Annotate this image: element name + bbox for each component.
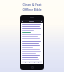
button[interactable]: App header: [20, 15, 44, 70]
staticText: Offline Bible: [22, 8, 42, 12]
button[interactable]: Home button: [31, 66, 34, 69]
staticText: Clean & Fast: [22, 3, 42, 7]
button[interactable]: Navigation bar: [22, 61, 42, 63]
button[interactable]: App header: [21, 20, 43, 23]
button[interactable]: Navigation bar: [22, 24, 42, 63]
